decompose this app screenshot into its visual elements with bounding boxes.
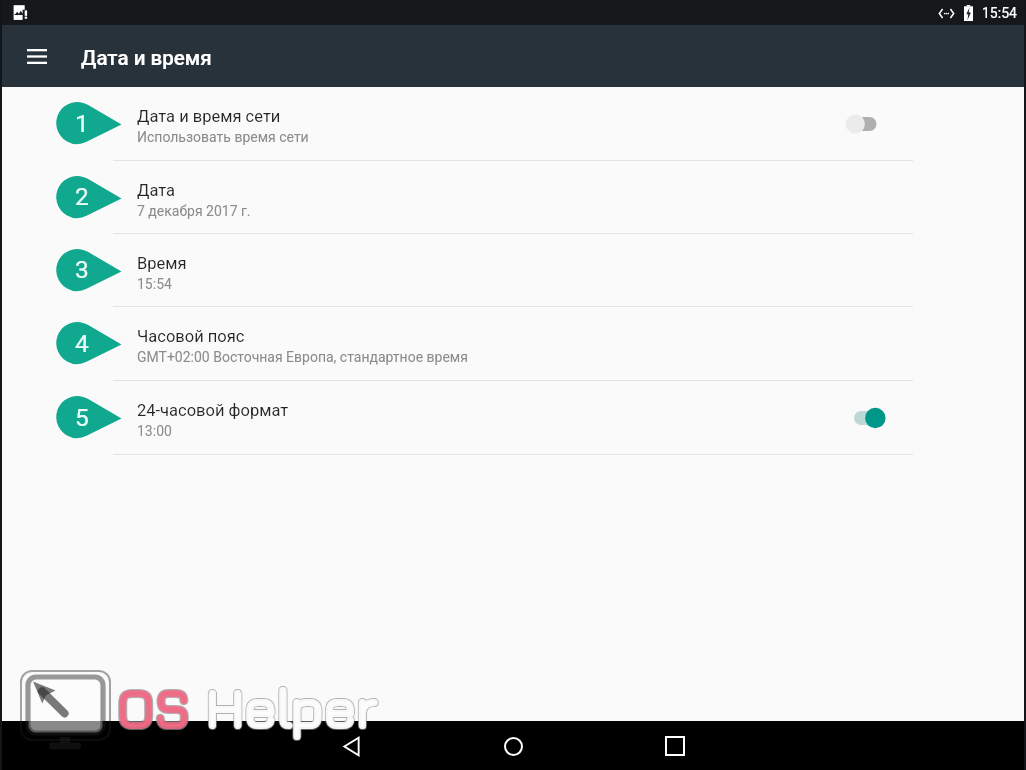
staticText: 15:54 bbox=[982, 5, 1017, 21]
staticText: 4 bbox=[68, 329, 96, 358]
staticText: Использовать время сети bbox=[137, 129, 309, 145]
button[interactable]: 2 bbox=[0, 161, 1026, 234]
staticText: Часовой пояс bbox=[137, 327, 245, 346]
staticText: Дата и время сети bbox=[137, 107, 281, 126]
staticText: 3 bbox=[68, 255, 96, 284]
staticText: OS bbox=[117, 675, 190, 739]
staticText: OS bbox=[117, 675, 190, 739]
staticText: Дата bbox=[137, 181, 176, 200]
button[interactable]: 4 bbox=[0, 307, 1026, 381]
staticText: Helper bbox=[206, 675, 377, 739]
staticText: GMT+02:00 Восточная Европа, стандартное … bbox=[137, 349, 468, 365]
staticText: 24-часовой формат bbox=[137, 401, 289, 420]
button[interactable]: 3 bbox=[0, 234, 1026, 307]
button[interactable]: Home bbox=[492, 725, 534, 767]
staticText: Helper bbox=[206, 675, 377, 739]
button[interactable]: Back bbox=[330, 725, 372, 767]
staticText: 5 bbox=[68, 403, 96, 432]
staticText: 15:54 bbox=[137, 276, 172, 292]
staticText: 2 bbox=[68, 182, 96, 211]
staticText: OS bbox=[117, 675, 190, 739]
staticText: Дата и время bbox=[81, 46, 212, 70]
staticText: 1 bbox=[68, 109, 96, 138]
button[interactable]: Open navigation menu bbox=[17, 36, 57, 76]
button[interactable]: 5 bbox=[0, 381, 1026, 455]
button[interactable]: 1 bbox=[0, 87, 1026, 161]
staticText: Helper bbox=[206, 675, 377, 739]
staticText: 13:00 bbox=[137, 423, 172, 439]
staticText: Время bbox=[137, 254, 187, 273]
staticText: 7 декабря 2017 г. bbox=[137, 203, 251, 219]
button[interactable]: Recent apps bbox=[654, 725, 696, 767]
other: Screenshot captured bbox=[13, 4, 28, 20]
